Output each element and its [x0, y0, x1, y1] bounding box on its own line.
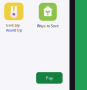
staticText: Give Joy Round Up	[6, 23, 22, 33]
button[interactable]: Ways to Save	[39, 3, 57, 28]
button[interactable]: Pay	[36, 72, 63, 84]
staticText: Pay	[46, 75, 53, 81]
staticText: Ways to Save	[37, 23, 59, 28]
button[interactable]: Give Joy Round Up	[4, 3, 23, 33]
